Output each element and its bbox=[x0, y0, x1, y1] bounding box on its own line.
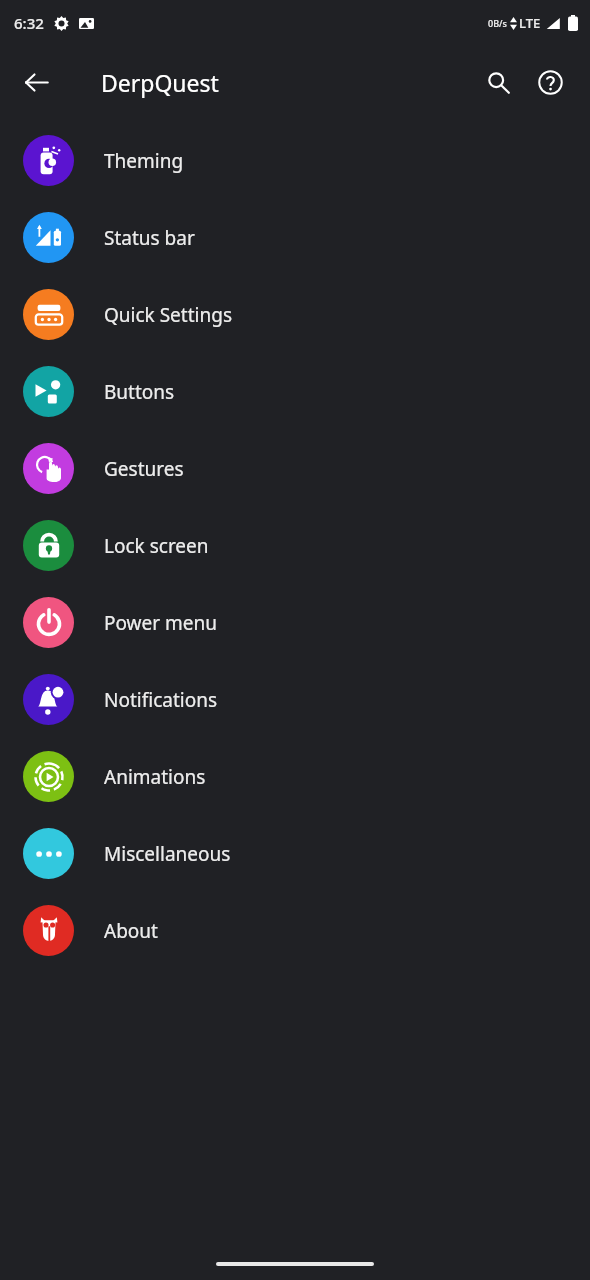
staticText: 6:32 bbox=[14, 13, 44, 33]
button[interactable]: Notifications bbox=[0, 661, 590, 738]
button[interactable]: About bbox=[0, 892, 590, 969]
staticText: Gestures bbox=[104, 456, 184, 482]
staticText: Notifications bbox=[104, 687, 218, 713]
button[interactable]: Buttons bbox=[0, 353, 590, 430]
button[interactable]: Gestures bbox=[0, 430, 590, 507]
staticText: 0B/s bbox=[488, 17, 507, 29]
staticText: Animations bbox=[104, 764, 206, 790]
staticText: Theming bbox=[104, 148, 184, 174]
staticText: DerpQuest bbox=[101, 67, 219, 98]
button[interactable]: Theming bbox=[0, 122, 590, 199]
button[interactable]: Quick Settings bbox=[0, 276, 590, 353]
staticText: LTE bbox=[519, 14, 541, 32]
button[interactable]: Help bbox=[524, 56, 576, 108]
staticText: Lock screen bbox=[104, 533, 209, 559]
button[interactable]: Lock screen bbox=[0, 507, 590, 584]
button[interactable]: Back bbox=[8, 54, 64, 110]
button[interactable]: Miscellaneous bbox=[0, 815, 590, 892]
button[interactable]: Status bar bbox=[0, 199, 590, 276]
staticText: Buttons bbox=[104, 379, 175, 405]
button[interactable]: Search bbox=[472, 56, 524, 108]
button[interactable]: Power menu bbox=[0, 584, 590, 661]
button[interactable]: Animations bbox=[0, 738, 590, 815]
staticText: Quick Settings bbox=[104, 302, 232, 328]
staticText: Power menu bbox=[104, 610, 218, 636]
staticText: About bbox=[104, 918, 158, 944]
staticText: Miscellaneous bbox=[104, 841, 231, 867]
staticText: Status bar bbox=[104, 225, 195, 251]
